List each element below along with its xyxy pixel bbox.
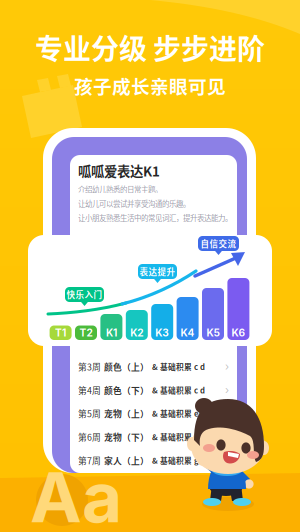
staticText: K1 — [106, 327, 117, 339]
staticText: 自信交流 — [200, 237, 236, 250]
button[interactable]: 第3周 — [70, 355, 237, 378]
staticText: 表达提升 — [139, 265, 175, 278]
button[interactable]: 第7周 — [70, 449, 237, 472]
staticText: 专业分级 步步进阶 — [35, 27, 265, 67]
staticText: 颜色（下） — [104, 384, 149, 396]
staticText: T2 — [79, 327, 92, 339]
button[interactable]: 第4周 — [70, 378, 237, 402]
staticText: › — [225, 454, 229, 467]
button[interactable]: 第6周 — [70, 425, 237, 449]
staticText: 孩子成长亲眼可见 — [74, 72, 226, 99]
button[interactable]: 第5周 — [70, 402, 237, 425]
staticText: & 基础积累 c d — [152, 384, 205, 396]
staticText: & 基础积累 e f — [152, 431, 203, 442]
staticText: 第7周 — [78, 454, 101, 467]
staticText: K5 — [206, 327, 219, 339]
staticText: 宠物（下） — [104, 430, 149, 443]
staticText: › — [225, 360, 229, 373]
staticText: 宠物（上） — [104, 407, 149, 420]
staticText: K4 — [181, 327, 195, 339]
staticText: & 基础积累 g h — [152, 455, 206, 466]
staticText: 让小朋友熟悉生活中的常见词汇，提升表达能力。 — [78, 212, 232, 223]
staticText: › — [225, 384, 229, 396]
staticText: T1 — [55, 327, 66, 339]
staticText: & 基础积累 c d — [152, 361, 205, 372]
staticText: 让幼儿可以尝试并享受沟通的乐趣。 — [78, 198, 190, 209]
staticText: 介绍幼儿熟悉的日常主题。 — [78, 184, 162, 195]
staticText: 第6周 — [78, 430, 101, 443]
staticText: K3 — [155, 327, 169, 339]
staticText: 第3周 — [78, 360, 101, 373]
staticText: 第5周 — [78, 407, 101, 420]
staticText: 第4周 — [78, 384, 101, 396]
staticText: K6 — [231, 327, 245, 339]
staticText: K2 — [130, 327, 143, 339]
staticText: & 基础积累 e f — [152, 408, 203, 419]
staticText: 家人（上） — [104, 454, 149, 467]
staticText: 呱呱爱表达K1 — [78, 161, 160, 180]
staticText: 快乐入门 — [66, 288, 102, 301]
staticText: Aa — [30, 455, 122, 532]
staticText: 颜色（上） — [104, 360, 149, 373]
